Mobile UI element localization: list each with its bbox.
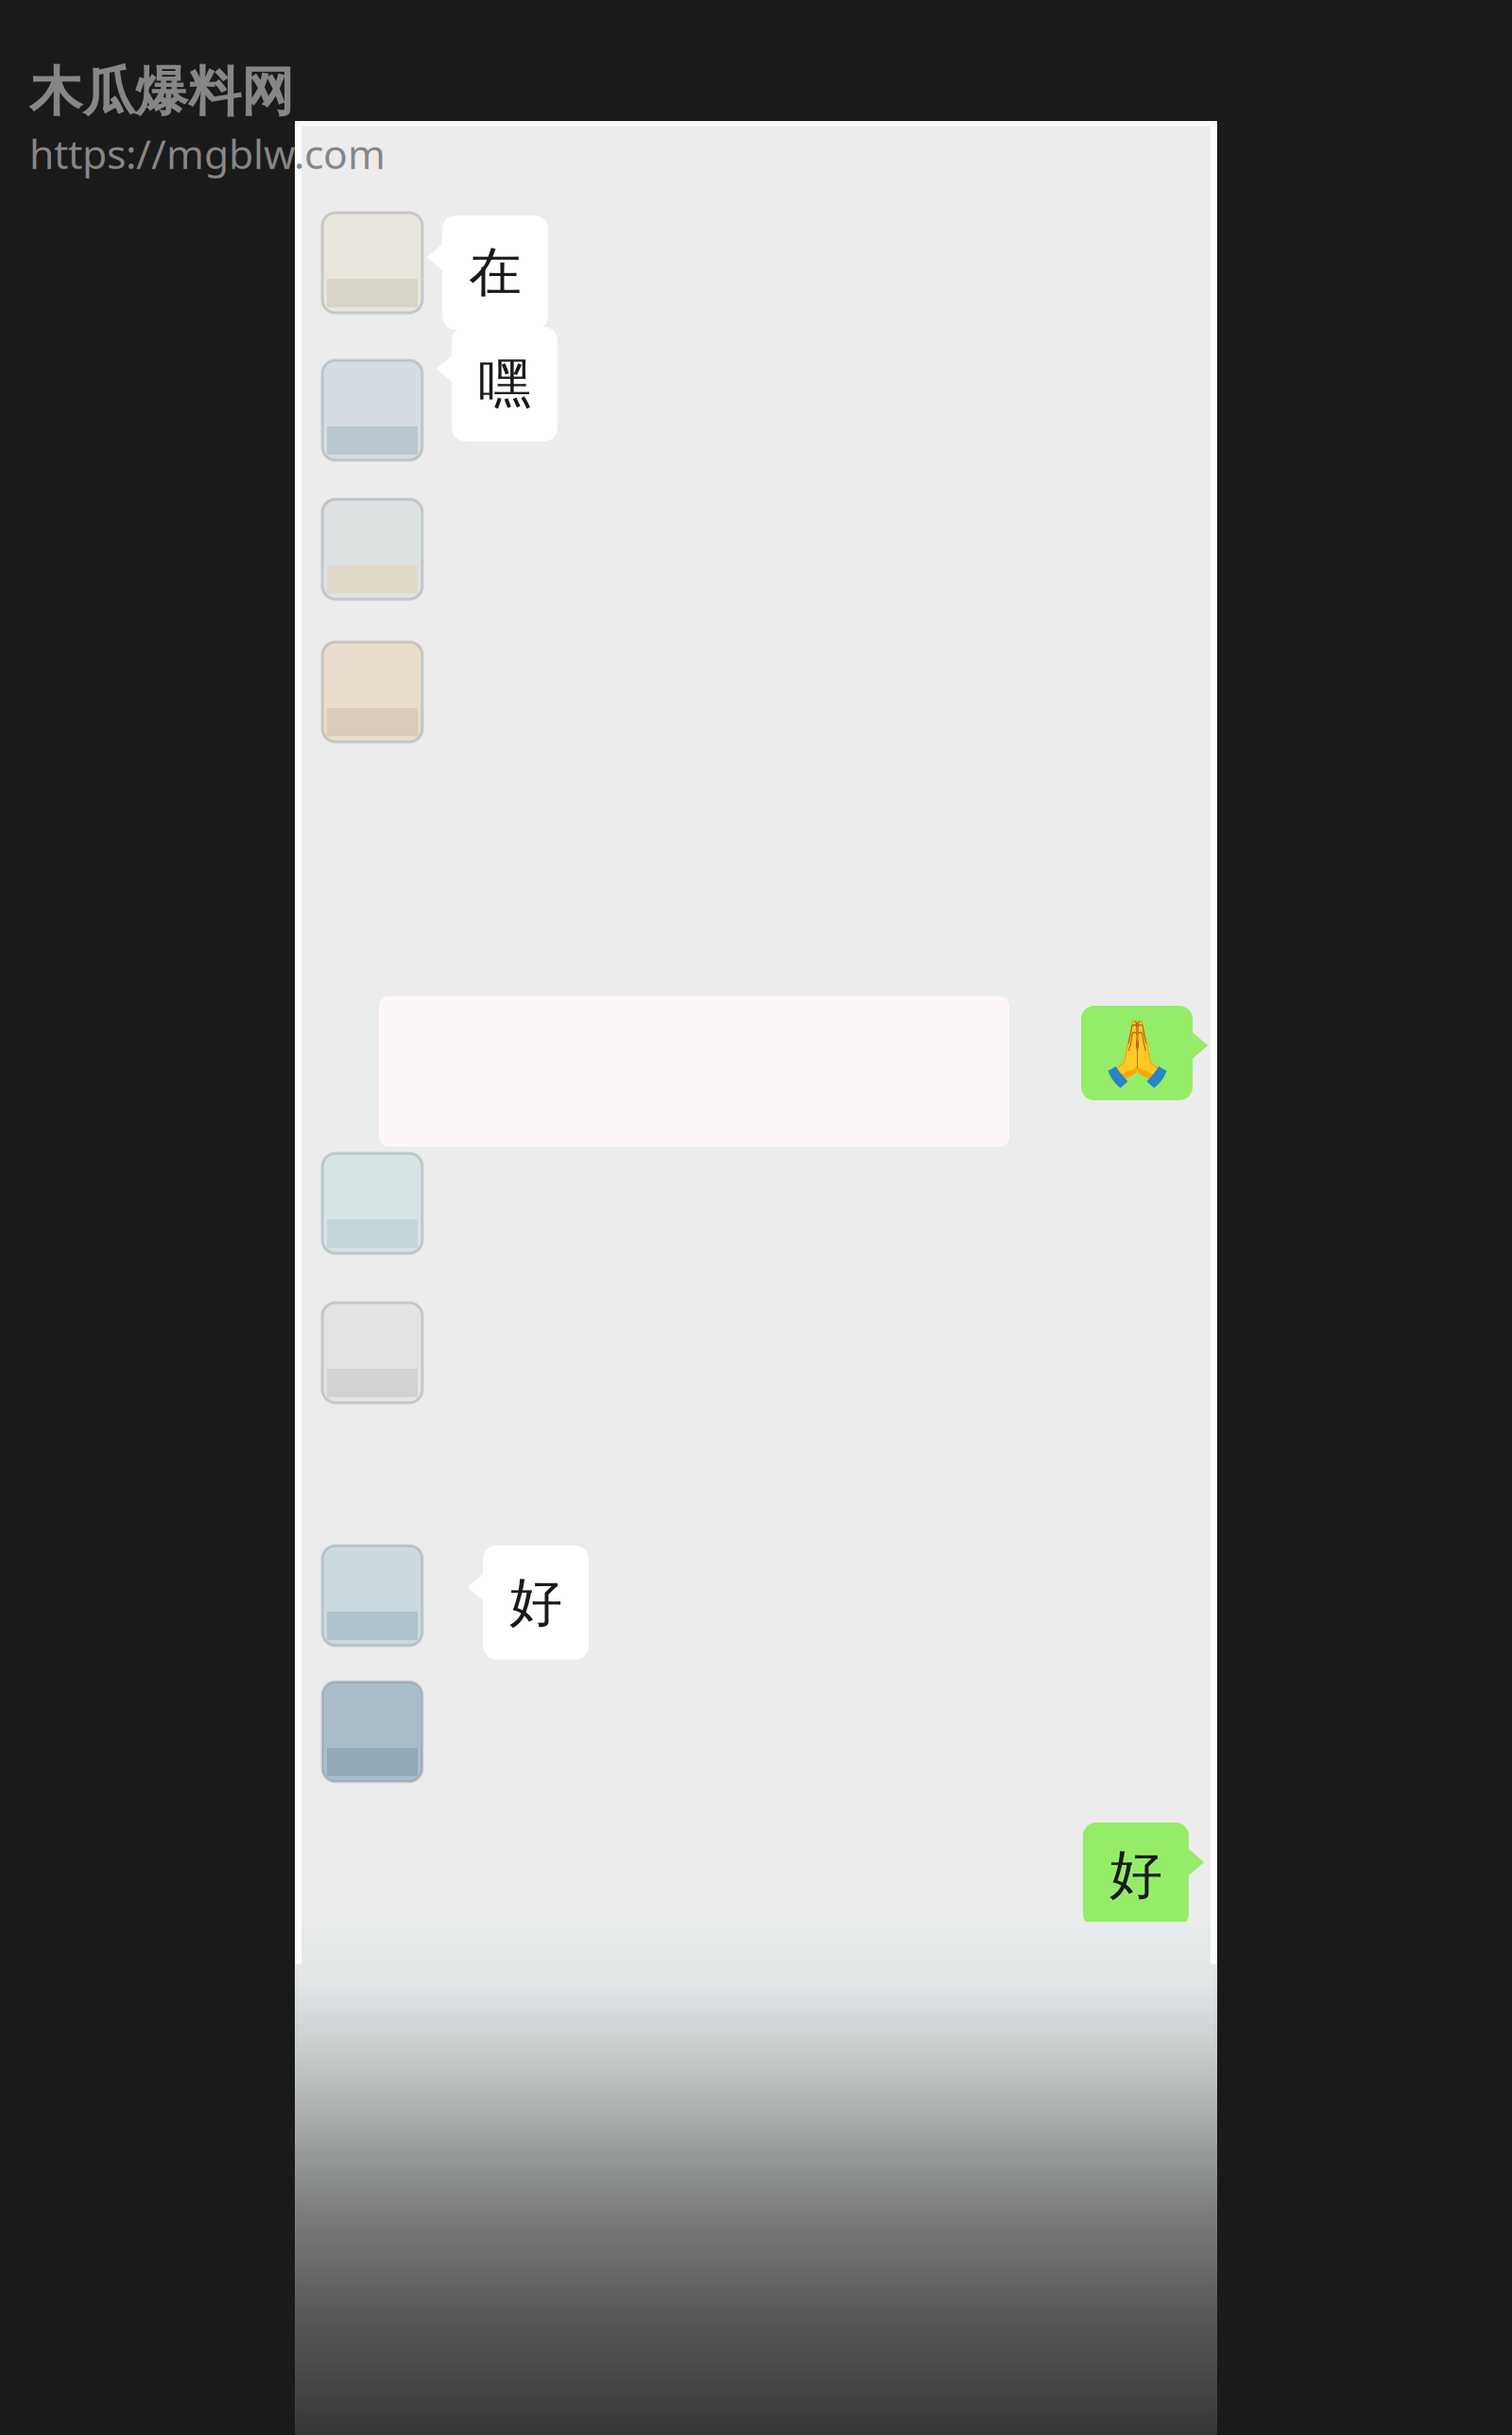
button[interactable]: Contact 5 [322,1153,422,1253]
staticText: 嘿 [478,352,531,417]
staticText: 好 [509,1570,562,1635]
button[interactable]: Contact 6 [322,1303,422,1403]
staticText: 好 [1109,1842,1162,1907]
button[interactable]: 在 [427,216,548,330]
button[interactable]: Sticker [1081,1006,1208,1100]
button[interactable]: Contact 2 [322,360,422,460]
staticText: 🙏 [1098,1017,1176,1089]
staticText: 在 [469,240,522,305]
button[interactable]: Contact 3 [322,499,422,599]
button[interactable]: Contact 1 [322,213,422,313]
button[interactable]: 嘿 [437,327,558,441]
staticText: 木瓜爆料网 [29,60,294,125]
button[interactable]: Contact 8 [322,1682,422,1782]
button[interactable]: Contact 7 [322,1546,422,1646]
staticText: https://mgblw.com [29,126,386,180]
button[interactable]: Contact 4 [322,642,422,742]
button[interactable]: 好 [1083,1822,1204,1927]
button[interactable]: 好 [468,1546,589,1660]
